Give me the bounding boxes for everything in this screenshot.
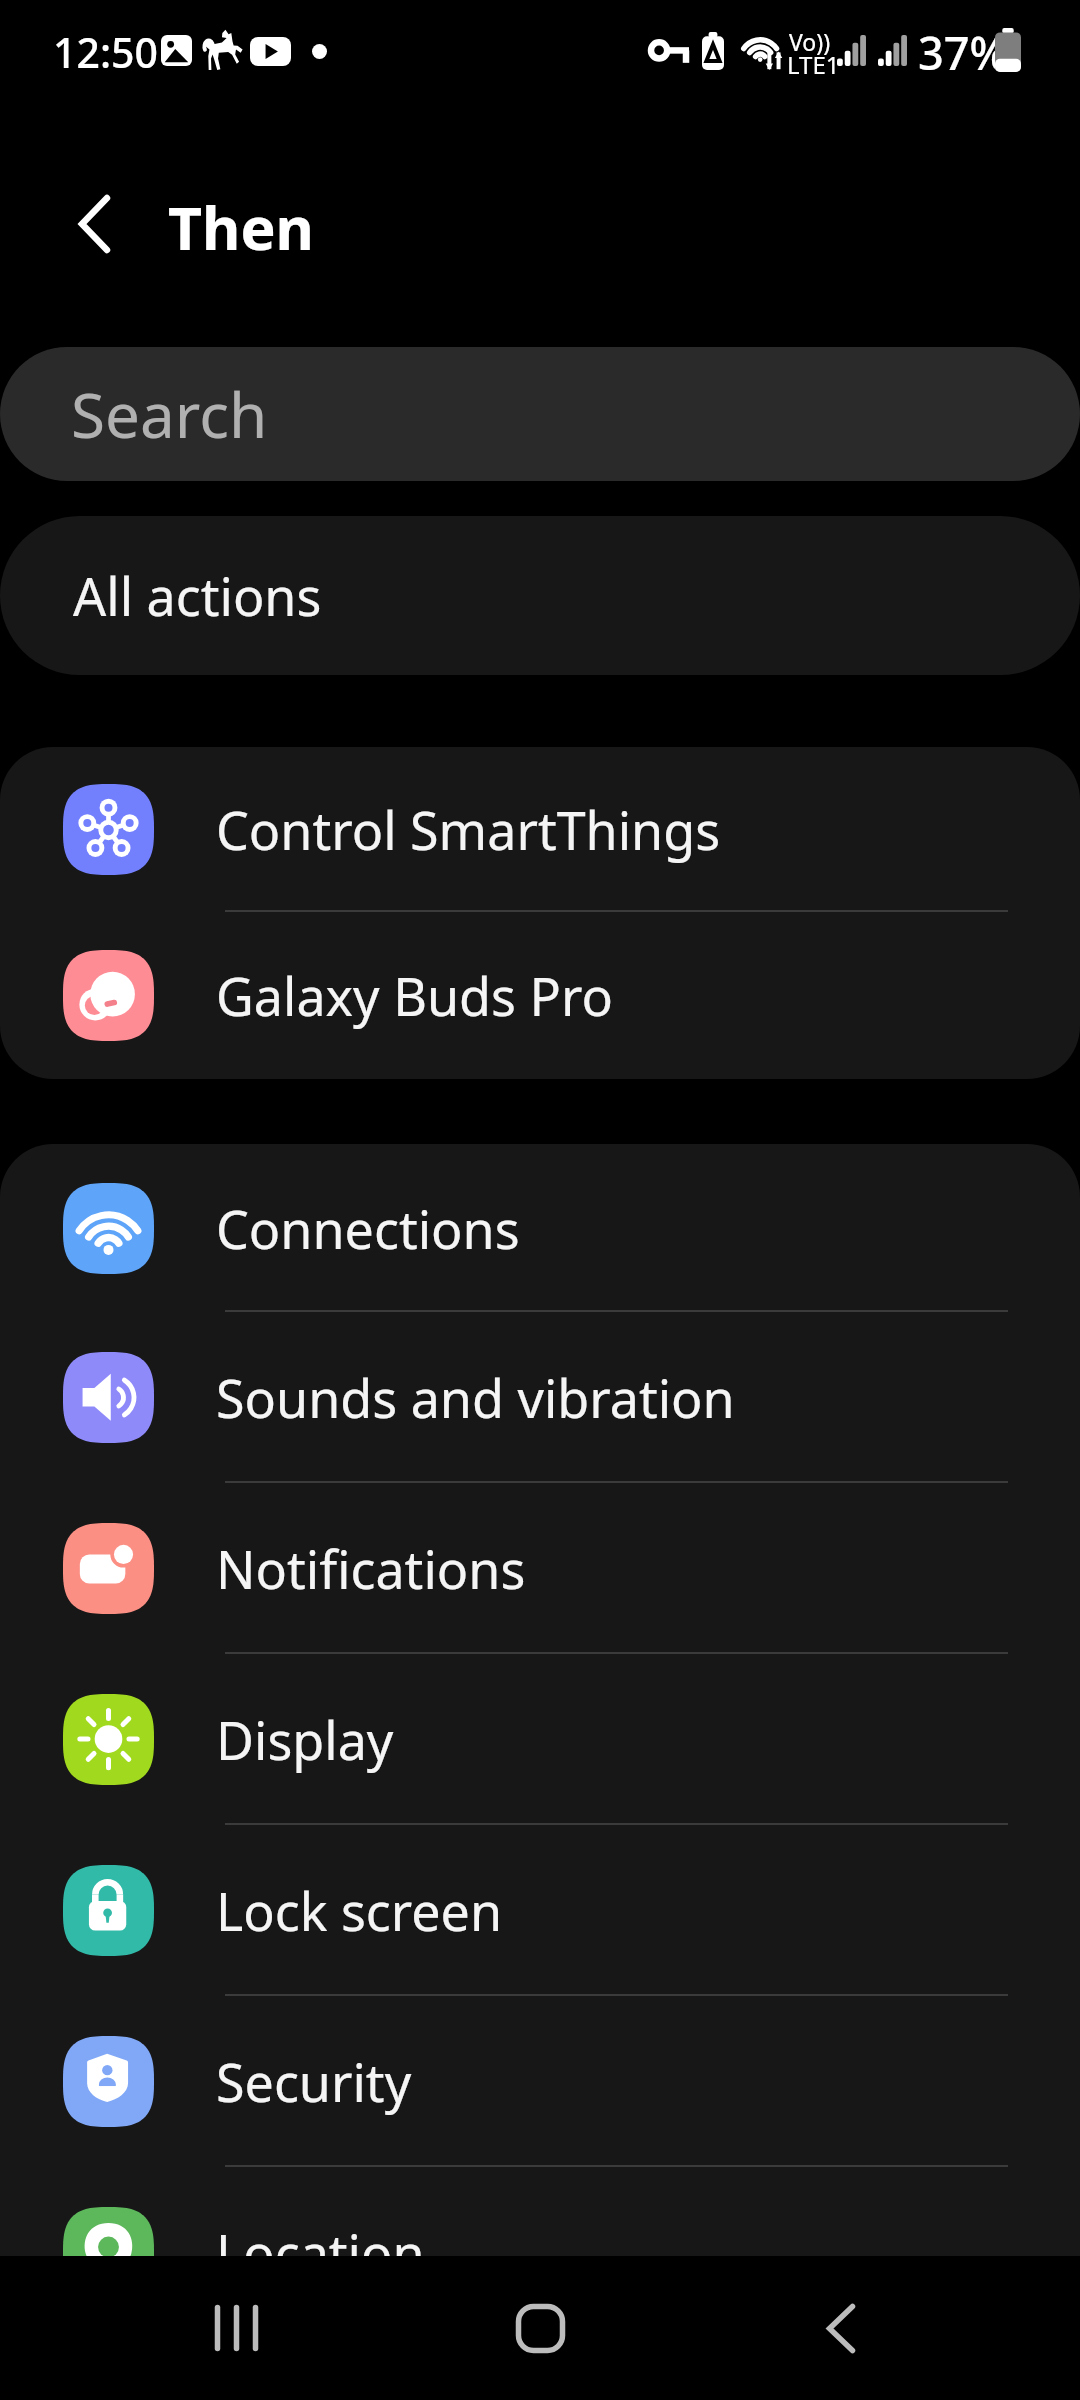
staticText: Sounds and vibration bbox=[216, 1362, 735, 1433]
staticText: Control SmartThings bbox=[216, 794, 721, 865]
button[interactable]: Security bbox=[0, 1996, 1080, 2167]
button[interactable]: Notifications bbox=[0, 1483, 1080, 1654]
button[interactable]: Display bbox=[0, 1654, 1080, 1825]
staticText: Vo)) bbox=[789, 26, 831, 57]
button[interactable]: Lock screen bbox=[0, 1825, 1080, 1996]
button[interactable]: Home bbox=[432, 2256, 648, 2400]
button[interactable]: Navigate up bbox=[42, 172, 146, 276]
staticText: All actions bbox=[73, 560, 322, 631]
staticText: Then bbox=[168, 187, 314, 267]
staticText: Notifications bbox=[216, 1533, 526, 1604]
button[interactable]: Recent apps bbox=[128, 2256, 344, 2400]
staticText: Search bbox=[71, 372, 268, 456]
button[interactable]: Location bbox=[0, 2167, 1080, 2338]
button[interactable]: Control SmartThings bbox=[0, 747, 1080, 912]
staticText: Display bbox=[216, 1704, 394, 1775]
staticText: Connections bbox=[216, 1193, 520, 1264]
staticText: LTE1 bbox=[787, 48, 840, 81]
button[interactable]: Search bbox=[0, 347, 1080, 481]
staticText: 37% bbox=[918, 22, 1008, 83]
button[interactable]: Galaxy Buds Pro bbox=[0, 912, 1080, 1079]
staticText: Security bbox=[216, 2046, 412, 2117]
button[interactable]: Connections bbox=[0, 1144, 1080, 1312]
staticText: Lock screen bbox=[216, 1875, 503, 1946]
staticText: 12:50 bbox=[53, 24, 158, 80]
button[interactable]: Back bbox=[733, 2256, 949, 2400]
button[interactable]: Sounds and vibration bbox=[0, 1312, 1080, 1483]
button[interactable]: All actions bbox=[0, 516, 1080, 675]
staticText: Location bbox=[216, 2217, 425, 2288]
staticText: Galaxy Buds Pro bbox=[216, 960, 613, 1031]
